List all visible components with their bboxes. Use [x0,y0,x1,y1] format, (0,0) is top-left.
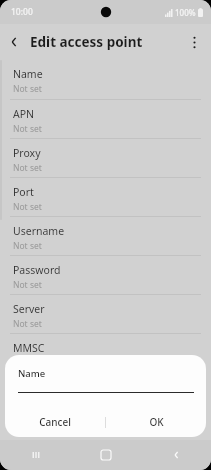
staticText: Not set [13,240,42,252]
staticText: MMS proxy [13,380,69,394]
button[interactable]: Port [0,178,211,216]
button[interactable]: Password [0,256,211,294]
button[interactable]: OK [106,407,206,437]
staticText: Not set [13,162,42,174]
button[interactable]: Recent apps [0,440,71,470]
staticText: Name [13,67,43,81]
staticText: Not set [13,318,42,330]
button[interactable]: Username [0,217,211,255]
button[interactable]: Back [141,440,211,470]
staticText: APN [13,107,35,121]
button[interactable]: Proxy [0,139,211,177]
staticText: 100% [175,7,196,18]
button[interactable]: Name [0,60,211,99]
button[interactable]: Cancel [5,407,105,437]
button[interactable]: Home [71,440,141,470]
staticText: Not set [13,83,42,95]
staticText: Edit access point [30,33,143,51]
staticText: Username [13,224,65,238]
button[interactable]: Back [0,28,28,56]
staticText: MMSC [13,341,45,355]
staticText: OK [149,415,164,429]
button[interactable]: Server [0,295,211,333]
button[interactable]: MMS proxy [0,373,211,411]
staticText: Not set [13,123,42,135]
staticText: Port [13,185,34,199]
staticText: Name [18,367,46,380]
staticText: Server [13,302,45,316]
staticText: Proxy [13,146,41,160]
button[interactable]: APN [0,100,211,138]
button[interactable]: MMSC [0,334,211,372]
staticText: Cancel [39,415,71,429]
button[interactable]: More options [181,29,207,55]
staticText: Password [13,263,61,277]
staticText: Not set [13,279,42,291]
staticText: Not set [13,201,42,213]
staticText: 10:00 [11,6,33,18]
